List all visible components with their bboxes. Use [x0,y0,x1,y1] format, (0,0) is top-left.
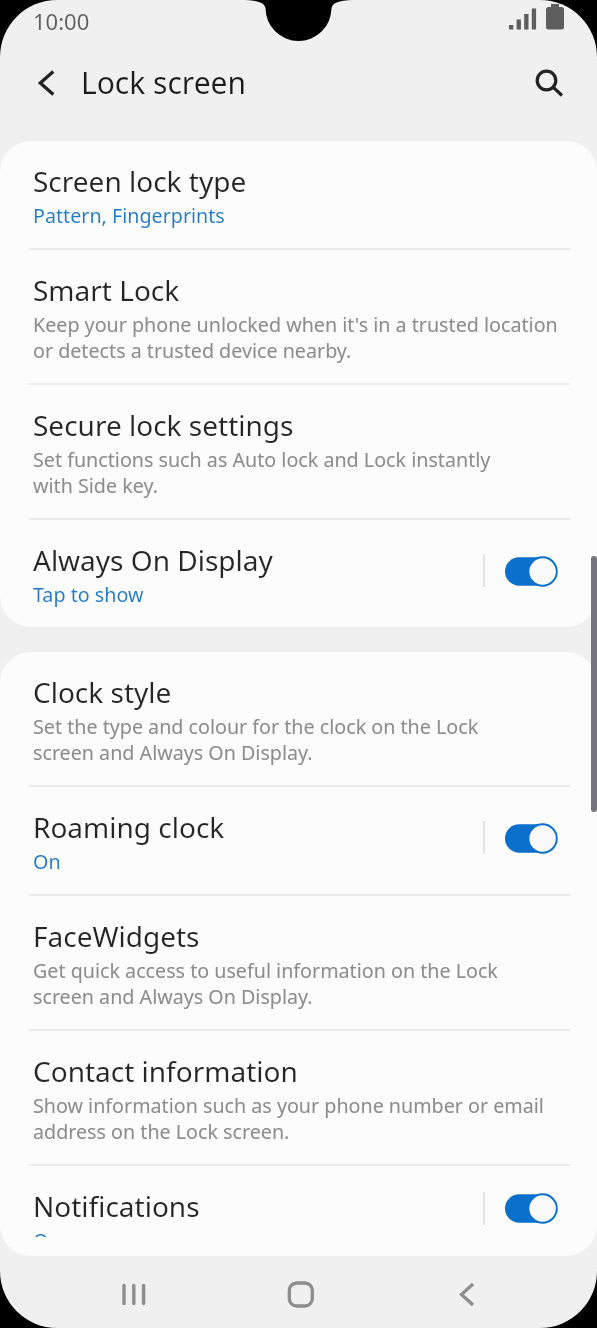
button[interactable]: Recent apps [0,1256,199,1328]
staticText: Smart Lock [33,271,180,309]
button[interactable]: Toggle Always On Display [485,545,557,605]
button[interactable]: Always On Display [0,520,597,627]
staticText: Tap to show [33,581,144,608]
button[interactable]: Screen lock type [0,141,597,248]
staticText: Pattern, Fingerprints [33,202,225,229]
button[interactable]: Search [515,48,585,118]
staticText: Contact information [33,1052,298,1090]
staticText: Set the type and colour for the clock on… [33,713,479,766]
button[interactable]: FaceWidgets [0,896,597,1029]
staticText: Roaming clock [33,808,225,846]
button[interactable]: Back [398,1256,597,1328]
staticText: On [33,848,61,875]
staticText: On [33,1227,61,1237]
staticText: FaceWidgets [33,917,200,955]
staticText: Show information such as your phone numb… [33,1092,544,1145]
button[interactable]: Notifications [0,1166,597,1256]
button[interactable]: Clock style [0,652,597,785]
button[interactable]: Roaming clock [0,787,597,894]
staticText: Lock screen [81,62,247,103]
staticText: Screen lock type [33,162,247,200]
button[interactable]: Secure lock settings [0,385,597,518]
button[interactable]: Contact information [0,1031,597,1164]
button[interactable]: Back [17,54,75,112]
staticText: Keep your phone unlocked when it's in a … [33,311,558,364]
staticText: 10:00 [33,6,90,36]
staticText: Clock style [33,673,172,711]
staticText: Always On Display [33,541,273,579]
staticText: Get quick access to useful information o… [33,957,498,1010]
staticText: Secure lock settings [33,406,294,444]
button[interactable]: Toggle Roaming clock [485,812,557,872]
button[interactable]: Smart Lock [0,250,597,383]
button[interactable]: Home [199,1256,398,1328]
button[interactable]: Toggle Notifications [485,1187,557,1237]
staticText: Set functions such as Auto lock and Lock… [33,446,491,499]
staticText: Notifications [33,1187,200,1225]
